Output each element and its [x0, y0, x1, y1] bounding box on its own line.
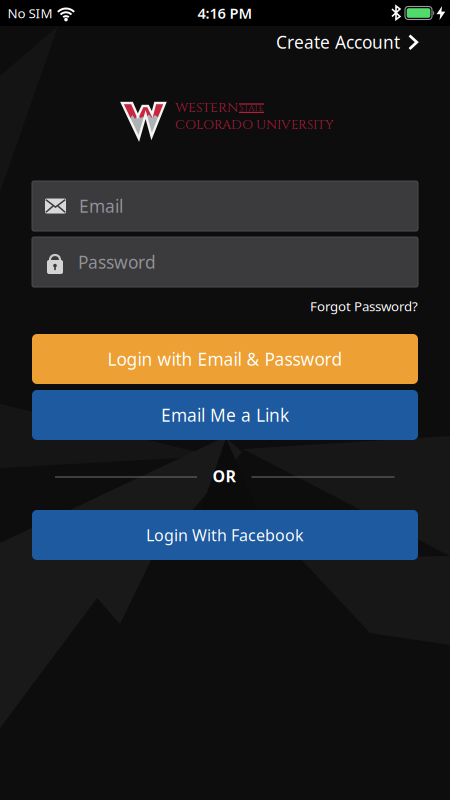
staticText: Create Account: [276, 30, 400, 53]
button[interactable]: Email: [32, 181, 418, 231]
button[interactable]: Password: [32, 237, 418, 287]
button[interactable]: Email Me a Link: [32, 390, 418, 440]
button[interactable]: Forgot Password?: [32, 297, 418, 315]
staticText: OR: [212, 465, 235, 487]
staticText: WESTERN: [175, 99, 238, 117]
staticText: Forgot Password?: [310, 297, 418, 315]
button[interactable]: Login with Email & Password: [32, 334, 418, 384]
staticText: COLORADO UNIVERSITY: [175, 116, 334, 134]
staticText: Email: [79, 194, 123, 217]
staticText: 4:16 PM: [197, 3, 252, 23]
staticText: STATE: [239, 103, 263, 114]
staticText: Login with Email & Password: [107, 347, 342, 370]
staticText: Email Me a Link: [161, 403, 289, 426]
button[interactable]: Login With Facebook: [32, 510, 418, 560]
button[interactable]: Create Account: [276, 30, 418, 53]
staticText: Login With Facebook: [146, 524, 304, 546]
staticText: No SIM: [7, 4, 52, 22]
staticText: Password: [78, 250, 156, 273]
